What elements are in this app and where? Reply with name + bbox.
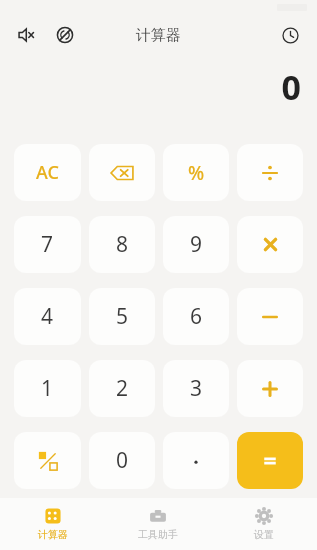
button[interactable]: 5 — [89, 288, 155, 345]
staticText: 6 — [190, 302, 203, 331]
staticText: 工具助手 — [138, 528, 178, 541]
button[interactable]: 1 — [14, 360, 81, 417]
button[interactable]: Divide — [237, 144, 303, 201]
button[interactable]: 3 — [163, 360, 229, 417]
staticText: 计算器 — [38, 528, 68, 541]
button[interactable]: 计算器 — [0, 498, 105, 550]
button[interactable]: Mute — [14, 22, 40, 48]
staticText: 1 — [41, 374, 54, 403]
staticText: 2 — [116, 374, 129, 403]
button[interactable]: Minus — [237, 288, 303, 345]
button[interactable]: Multiply — [237, 216, 303, 273]
staticText: AC — [36, 160, 59, 185]
button[interactable]: Backspace — [89, 144, 155, 201]
button[interactable]: 0 — [89, 432, 155, 489]
button[interactable]: % — [163, 144, 229, 201]
button[interactable]: Decimal point — [163, 432, 229, 489]
button[interactable]: 2 — [89, 360, 155, 417]
staticText: 4 — [41, 302, 54, 331]
button[interactable]: 设置 — [211, 498, 317, 550]
button[interactable]: 6 — [163, 288, 229, 345]
button[interactable]: 9 — [163, 216, 229, 273]
button[interactable]: 4 — [14, 288, 81, 345]
staticText: % — [188, 160, 205, 186]
staticText: 0 — [116, 446, 129, 475]
staticText: 0 — [281, 64, 301, 110]
button[interactable]: History — [277, 22, 303, 48]
button[interactable]: 8 — [89, 216, 155, 273]
staticText: 7 — [41, 230, 54, 259]
button[interactable]: 工具助手 — [105, 498, 211, 550]
staticText: 8 — [116, 230, 129, 259]
staticText: 5 — [116, 302, 129, 331]
staticText: 9 — [190, 230, 203, 259]
button[interactable]: Unit convert — [14, 432, 81, 489]
button[interactable]: AC — [14, 144, 81, 201]
button[interactable]: Plus — [237, 360, 303, 417]
staticText: 设置 — [254, 528, 274, 541]
button[interactable]: Vibration — [52, 22, 78, 48]
button[interactable]: Equals — [237, 432, 303, 489]
staticText: 3 — [190, 374, 203, 403]
button[interactable]: 7 — [14, 216, 81, 273]
staticText: 计算器 — [136, 26, 181, 45]
